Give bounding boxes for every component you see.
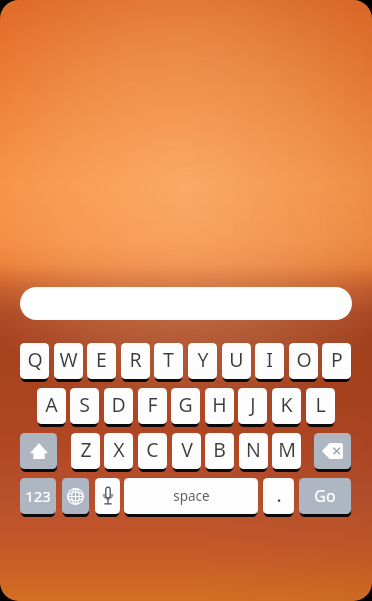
staticText: Q bbox=[27, 346, 43, 373]
button[interactable]: D bbox=[104, 388, 133, 424]
button[interactable]: Shift bbox=[20, 433, 57, 469]
button[interactable]: R bbox=[121, 343, 150, 379]
staticText: H bbox=[212, 391, 227, 418]
staticText: X bbox=[113, 436, 125, 463]
button[interactable]: B bbox=[205, 433, 234, 469]
button[interactable]: Go bbox=[299, 478, 351, 514]
staticText: M bbox=[278, 436, 296, 463]
staticText: K bbox=[280, 391, 293, 418]
staticText: Y bbox=[197, 346, 209, 373]
staticText: P bbox=[331, 346, 343, 373]
button[interactable]: M bbox=[272, 433, 301, 469]
button[interactable]: F bbox=[138, 388, 167, 424]
button[interactable]: A bbox=[37, 388, 66, 424]
button[interactable]: S bbox=[70, 388, 99, 424]
button[interactable] bbox=[20, 287, 352, 320]
button[interactable]: J bbox=[238, 388, 267, 424]
button[interactable]: . bbox=[263, 478, 294, 514]
staticText: S bbox=[79, 391, 90, 418]
button[interactable]: Z bbox=[71, 433, 100, 469]
staticText: 123 bbox=[25, 486, 51, 506]
staticText: . bbox=[276, 481, 282, 508]
staticText: Go bbox=[314, 485, 336, 507]
staticText: F bbox=[147, 391, 158, 418]
button[interactable]: Backspace bbox=[314, 433, 351, 469]
staticText: R bbox=[129, 346, 142, 373]
button[interactable]: H bbox=[205, 388, 234, 424]
staticText: N bbox=[246, 436, 261, 463]
button[interactable]: P bbox=[322, 343, 351, 379]
button[interactable]: Q bbox=[20, 343, 49, 379]
staticText: A bbox=[45, 391, 58, 418]
staticText: V bbox=[181, 436, 193, 463]
button[interactable]: O bbox=[289, 343, 318, 379]
staticText: W bbox=[59, 346, 78, 373]
staticText: J bbox=[250, 391, 256, 418]
staticText: G bbox=[178, 391, 193, 418]
button[interactable]: Voice input bbox=[95, 478, 120, 514]
staticText: U bbox=[229, 346, 244, 373]
button[interactable]: W bbox=[54, 343, 83, 379]
button[interactable]: L bbox=[306, 388, 335, 424]
staticText: C bbox=[146, 436, 159, 463]
button[interactable]: X bbox=[104, 433, 133, 469]
staticText: space bbox=[173, 487, 210, 505]
staticText: T bbox=[163, 346, 174, 373]
staticText: L bbox=[315, 391, 326, 418]
button[interactable]: I bbox=[255, 343, 284, 379]
staticText: I bbox=[266, 346, 273, 373]
button[interactable]: T bbox=[154, 343, 183, 379]
button[interactable]: N bbox=[239, 433, 268, 469]
staticText: E bbox=[96, 346, 107, 373]
button[interactable]: Y bbox=[188, 343, 217, 379]
staticText: D bbox=[111, 391, 126, 418]
button[interactable]: U bbox=[222, 343, 251, 379]
button[interactable]: space bbox=[124, 478, 258, 514]
button[interactable]: 123 bbox=[20, 478, 56, 514]
button[interactable]: G bbox=[171, 388, 200, 424]
staticText: B bbox=[213, 436, 226, 463]
button[interactable]: C bbox=[138, 433, 167, 469]
button[interactable]: K bbox=[272, 388, 301, 424]
button[interactable]: E bbox=[87, 343, 116, 379]
button[interactable]: V bbox=[172, 433, 201, 469]
button[interactable]: Change keyboard bbox=[62, 478, 89, 514]
staticText: O bbox=[296, 346, 312, 373]
staticText: Z bbox=[80, 436, 92, 463]
